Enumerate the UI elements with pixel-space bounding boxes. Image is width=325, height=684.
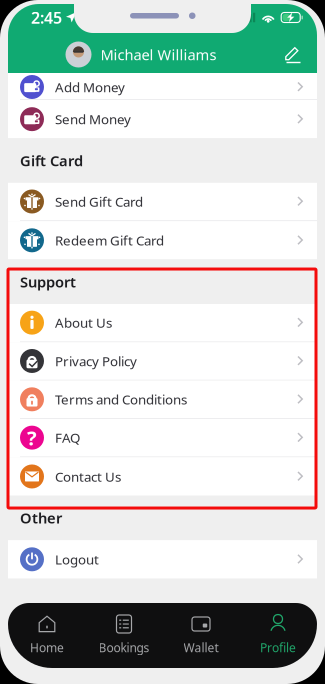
staticText: ? [27,424,37,451]
button[interactable]: Profile [239,612,316,658]
staticText: Terms and Conditions [55,390,187,408]
button[interactable]: Send Gift Card [8,183,317,221]
staticText: FAQ [55,429,80,446]
staticText: Wallet [183,639,218,655]
staticText: 2:45 [31,7,62,28]
button[interactable]: Privacy Policy [8,342,317,381]
button[interactable]: Edit profile [274,44,317,64]
staticText: Send Gift Card [55,193,143,210]
button[interactable]: Home [8,612,85,658]
staticText: Privacy Policy [55,352,137,370]
staticText: Logout [55,550,99,568]
staticText: About Us [55,314,112,331]
staticText: Add Money [55,78,125,96]
button[interactable]: Contact Us [8,457,317,496]
button[interactable]: ? [8,419,317,457]
button[interactable]: Add Money [8,73,317,100]
staticText: Michael Williams [100,45,216,64]
staticText: Gift Card [20,151,83,170]
button[interactable]: About Us [8,304,317,342]
staticText: Profile [260,639,296,655]
staticText: Redeem Gift Card [55,231,164,249]
staticText: Support [20,272,76,291]
button[interactable]: Redeem Gift Card [8,221,317,259]
button[interactable]: Terms and Conditions [8,381,317,419]
button[interactable]: Send Money [8,100,317,138]
staticText: Home [30,639,64,655]
staticText: Other [20,508,62,528]
button[interactable]: Bookings [85,612,162,658]
button[interactable]: Wallet [162,612,239,658]
staticText: Contact Us [55,468,121,485]
staticText: Bookings [98,639,149,655]
button[interactable]: Logout [8,540,317,578]
staticText: Send Money [55,110,131,128]
